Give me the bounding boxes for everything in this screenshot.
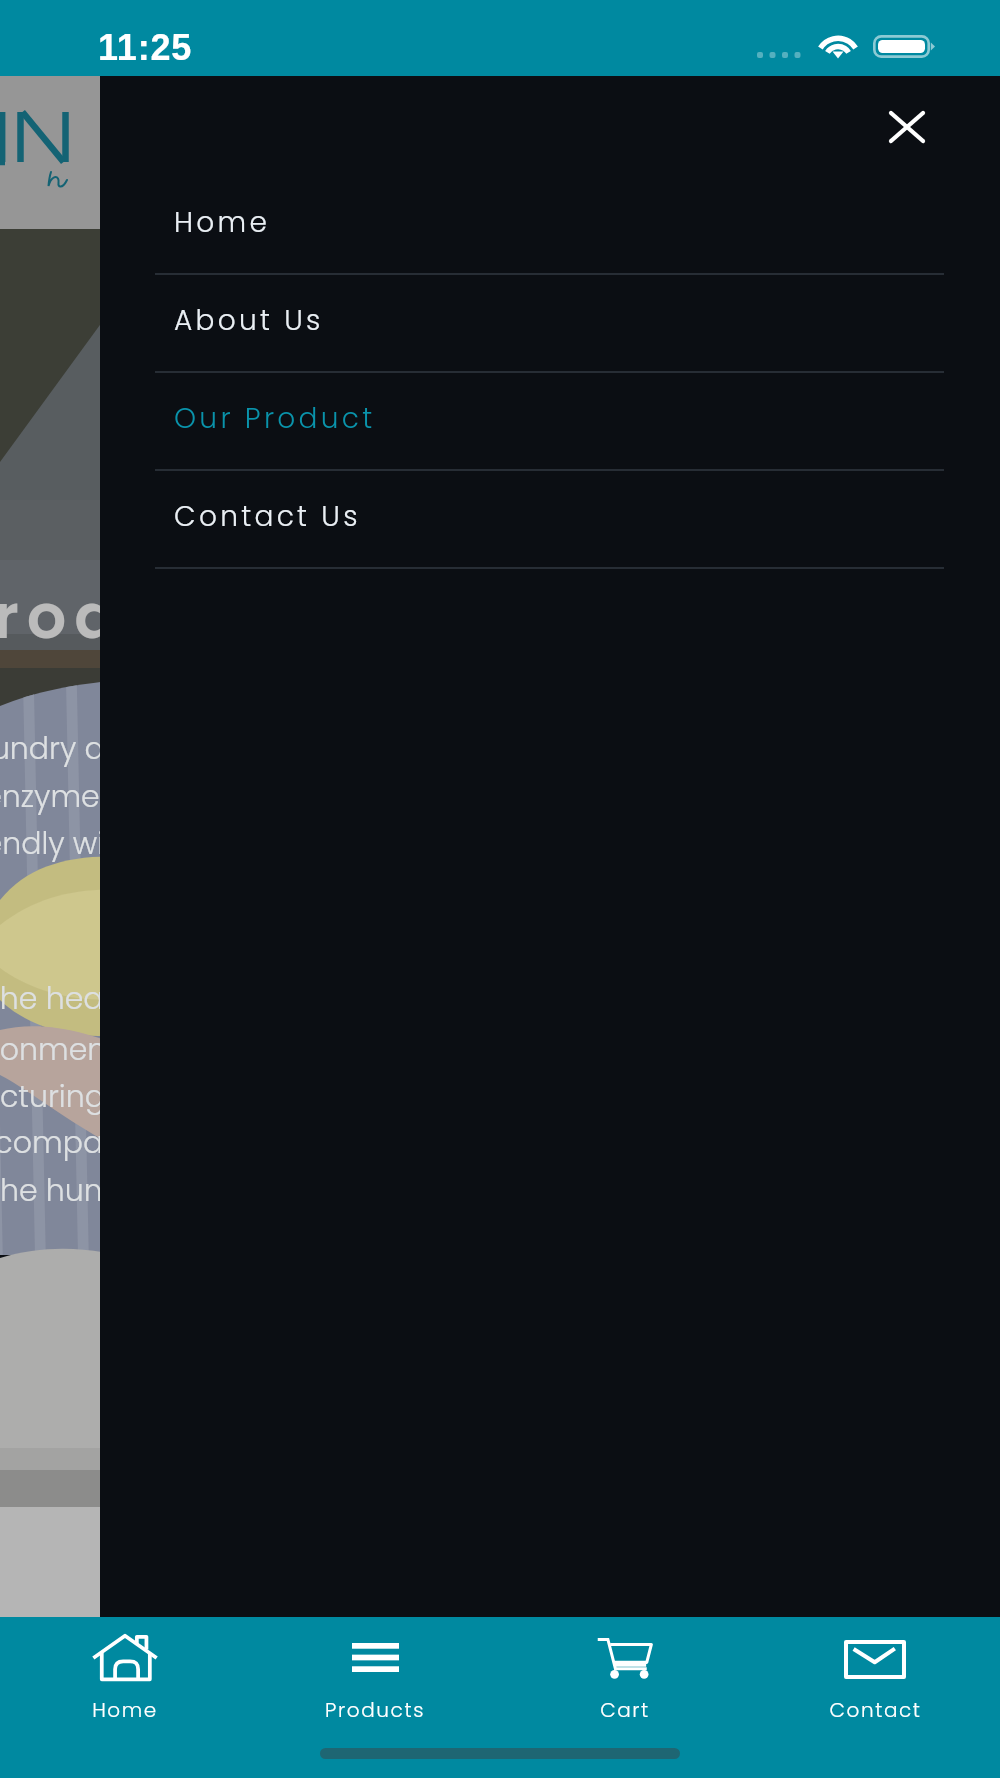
button[interactable]: Close menu (873, 93, 941, 161)
staticText: of the human (0, 1170, 154, 1212)
button[interactable]: Contact Us (100, 471, 1000, 569)
button[interactable]: About Us (100, 275, 1000, 373)
button[interactable]: Home (0, 1617, 250, 1778)
staticText: friendly with (0, 823, 134, 865)
staticText: Home (92, 1696, 158, 1724)
button[interactable]: Home (100, 177, 1000, 275)
staticText: About Us (174, 301, 324, 340)
button[interactable]: Products (250, 1617, 500, 1778)
staticText: Our Product (174, 399, 376, 438)
staticText: Product (0, 573, 251, 660)
button[interactable]: Contact (750, 1617, 1000, 1778)
staticText: Cart (600, 1696, 650, 1724)
staticText: Contact Us (174, 497, 361, 536)
button[interactable]: Our Product (100, 373, 1000, 471)
staticText: 11:25 (98, 27, 193, 67)
staticText: for the health (0, 978, 141, 1020)
staticText: environment (0, 1029, 118, 1071)
staticText: Home (174, 203, 271, 242)
staticText: Laundry detergent (0, 728, 233, 770)
staticText: manufacturing (0, 1076, 105, 1118)
staticText: with enzymes, (0, 776, 121, 818)
staticText: Contact (829, 1696, 922, 1724)
button[interactable]: Cart (500, 1617, 750, 1778)
staticText: our company (0, 1122, 139, 1164)
staticText: Products (325, 1696, 425, 1724)
